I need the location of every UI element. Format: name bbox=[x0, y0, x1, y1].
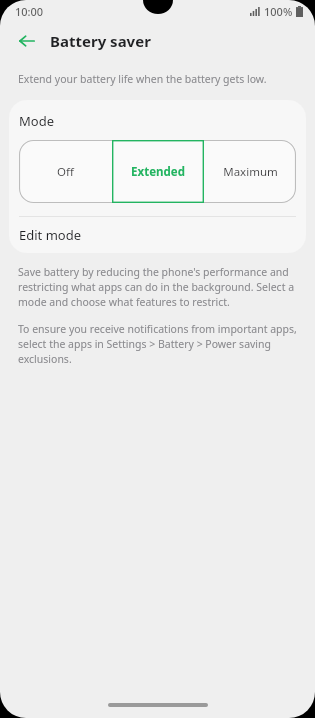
staticText: Extended bbox=[131, 164, 185, 180]
button[interactable]: Edit mode bbox=[9, 217, 306, 253]
staticText: 100% bbox=[264, 4, 293, 19]
button[interactable]: Off bbox=[19, 140, 112, 203]
staticText: Maximum bbox=[223, 164, 278, 180]
staticText: Edit mode bbox=[19, 226, 81, 244]
staticText: Off bbox=[57, 164, 74, 180]
staticText: Mode bbox=[19, 112, 54, 130]
button[interactable]: Extended bbox=[112, 140, 204, 203]
staticText: Battery saver bbox=[50, 31, 151, 51]
button[interactable]: Maximum bbox=[204, 140, 296, 203]
staticText: To ensure you receive notifications from… bbox=[18, 322, 299, 366]
staticText: Extend your battery life when the batter… bbox=[18, 72, 267, 86]
staticText: 10:00 bbox=[15, 4, 44, 19]
staticText: Save battery by reducing the phone's per… bbox=[18, 265, 299, 309]
button[interactable]: Back bbox=[14, 28, 40, 54]
